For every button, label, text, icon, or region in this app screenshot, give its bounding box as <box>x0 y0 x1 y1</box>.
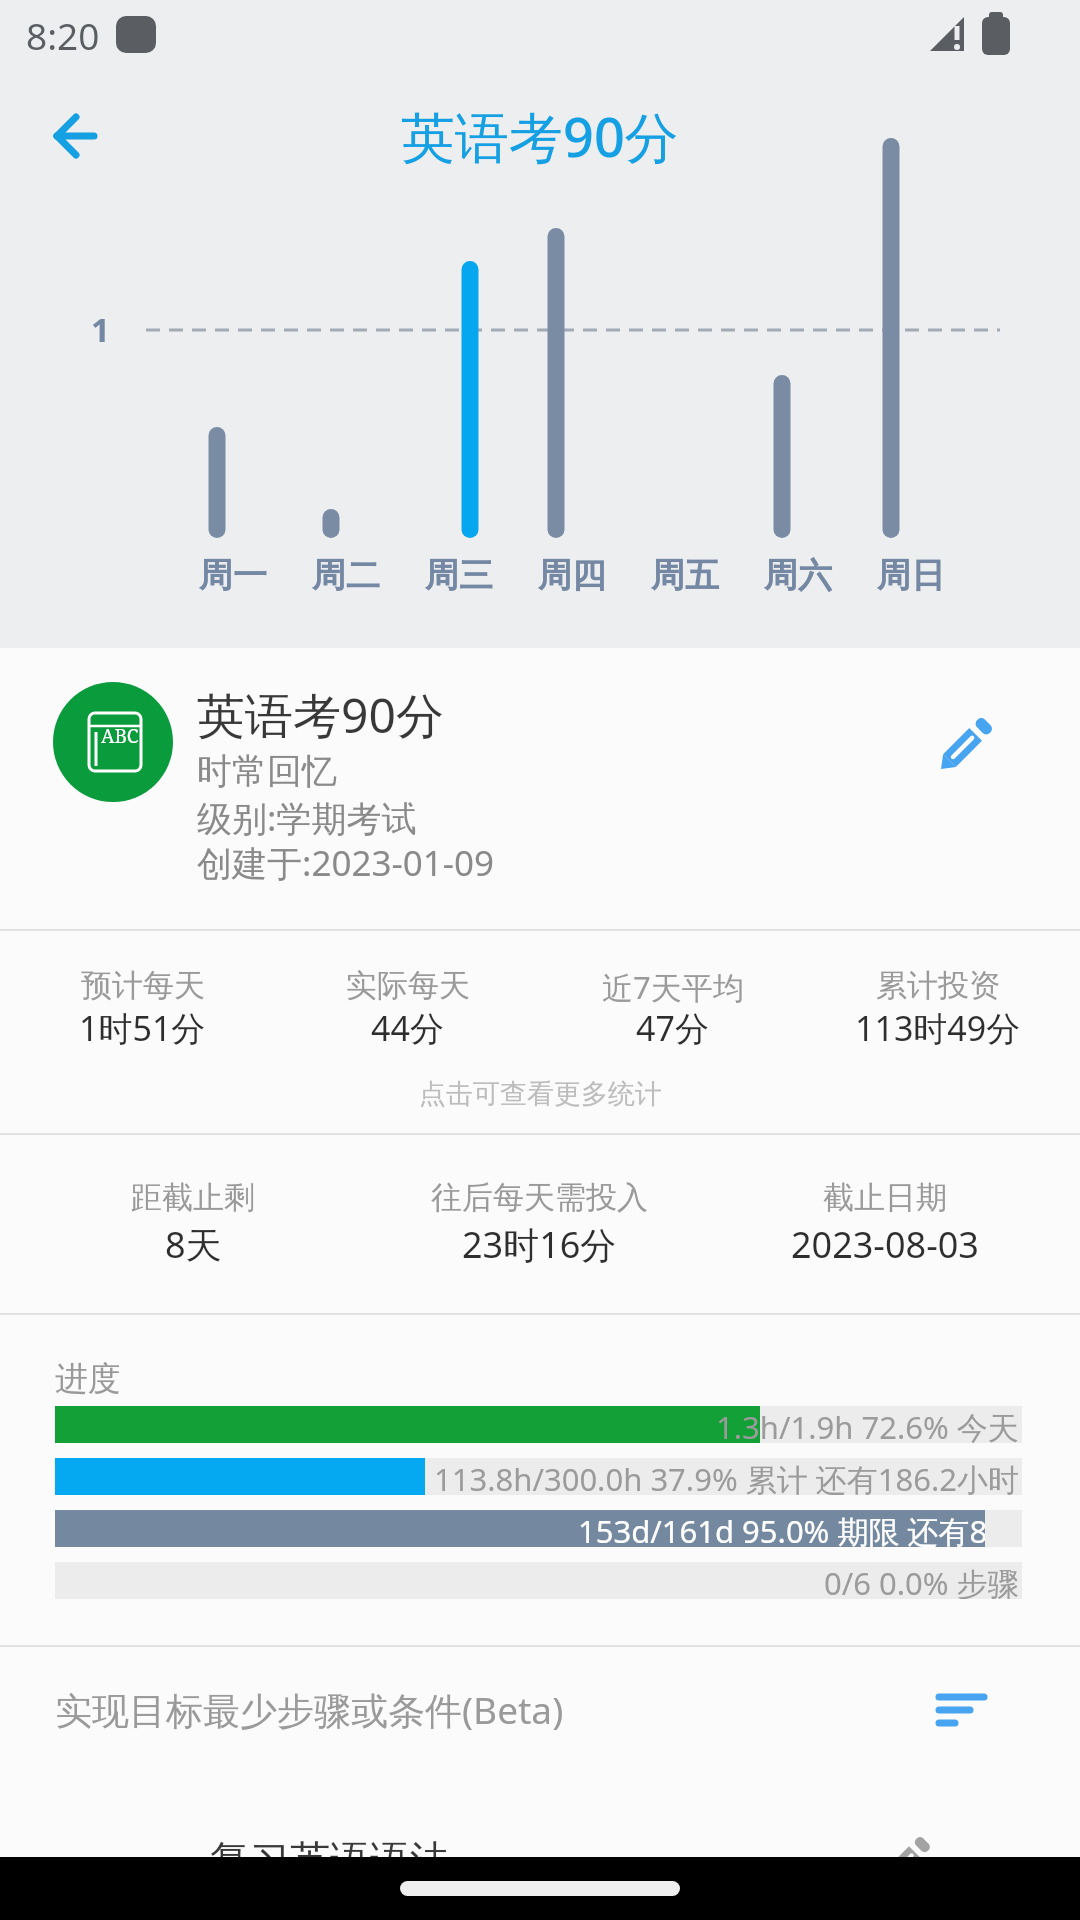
button[interactable]: 点击可查看更多统计 <box>0 1077 1080 1111</box>
staticText: ABC <box>101 723 139 749</box>
staticText: 累计投资 <box>876 966 1000 1005</box>
staticText: 级别:学期考试 <box>197 794 417 842</box>
staticText: 1时51分 <box>79 1005 206 1051</box>
staticText: 8:20 <box>26 10 100 60</box>
button[interactable] <box>0 1830 1080 1857</box>
staticText: 复习英语语法 <box>210 1835 450 1885</box>
staticText: 周五 <box>651 554 719 597</box>
staticText: 47分 <box>636 1005 709 1051</box>
staticText: 截止日期 <box>823 1178 947 1217</box>
staticText: 英语考90分 <box>401 99 679 173</box>
staticText: 周一 <box>199 554 267 597</box>
staticText: 时常回忆 <box>197 749 337 793</box>
staticText: 创建于:2023-01-09 <box>197 839 495 887</box>
staticText: 周日 <box>877 554 945 597</box>
staticText: 周四 <box>538 554 606 597</box>
staticText: 周二 <box>312 554 380 597</box>
staticText: 0/6 0.0% 步骤 <box>824 1562 1019 1599</box>
staticText: 进度 <box>55 1358 121 1400</box>
staticText: 1 <box>91 307 110 352</box>
staticText: 2023-08-03 <box>791 1220 979 1269</box>
staticText: 113时49分 <box>855 1005 1021 1051</box>
staticText: 1.3h/1.9h 72.6% 今天 <box>716 1406 1019 1443</box>
staticText: 153d/161d 95.0% 期限 还有8天 <box>578 1510 1019 1547</box>
staticText: 预计每天 <box>81 966 205 1005</box>
staticText: 实现目标最少步骤或条件(Beta) <box>55 1684 564 1735</box>
staticText: 距截止剩 <box>131 1178 255 1217</box>
staticText: 实际每天 <box>346 966 470 1005</box>
button[interactable] <box>53 682 173 802</box>
button[interactable] <box>40 100 112 172</box>
staticText: 周六 <box>764 554 832 597</box>
staticText: 近7天平均 <box>602 966 744 1008</box>
button[interactable] <box>928 710 998 780</box>
staticText: 8天 <box>165 1220 222 1269</box>
staticText: 英语考90分 <box>197 682 444 748</box>
staticText: 点击可查看更多统计 <box>419 1077 662 1111</box>
staticText: 往后每天需投入 <box>431 1178 648 1217</box>
staticText: 44分 <box>371 1005 444 1051</box>
staticText: 周三 <box>425 554 493 597</box>
button[interactable] <box>925 1680 1000 1740</box>
staticText: 113.8h/300.0h 37.9% 累计 还有186.2小时 <box>434 1458 1019 1495</box>
staticText: 23时16分 <box>462 1220 617 1269</box>
